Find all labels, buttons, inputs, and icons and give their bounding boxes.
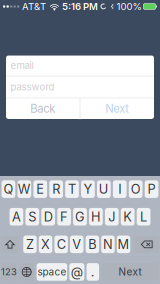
button[interactable]: L [137,208,150,225]
button[interactable]: W [17,180,31,198]
button[interactable]: Z [23,236,37,253]
button[interactable]: D [41,208,55,225]
staticText: K [123,209,132,224]
staticText: N [103,237,113,252]
staticText: @ [71,264,83,280]
button[interactable]: P [145,180,158,198]
staticText: H [91,209,101,224]
staticText: D [44,209,53,224]
button[interactable]: K [121,208,135,225]
button[interactable]: B [86,236,99,253]
button[interactable]: Next [80,98,154,119]
staticText: X [41,237,50,252]
staticText: R [52,181,60,197]
staticText: Y [83,181,92,197]
button[interactable]: Next [101,263,159,281]
button[interactable]: Delete [134,236,159,253]
staticText: AT&T [22,1,46,12]
staticText: G [75,209,85,224]
staticText: U [99,181,109,197]
button[interactable]: A [9,208,23,225]
staticText: C [57,237,66,252]
staticText: T [68,181,76,197]
staticText: Back [30,102,55,116]
button[interactable]: M [117,236,130,253]
staticText: E [36,181,44,197]
staticText: email [11,60,34,71]
staticText: V [72,237,81,252]
button[interactable]: X [39,236,52,253]
button[interactable]: Shift [1,236,19,253]
button[interactable]: V [70,236,83,253]
staticText: M [117,237,129,252]
button[interactable]: J [105,208,119,225]
staticText: Next [118,266,141,278]
button[interactable]: S [25,208,39,225]
button[interactable]: @ [69,263,84,281]
button[interactable]: Next keyboard [19,263,34,281]
button[interactable]: H [89,208,103,225]
staticText: I [118,181,121,197]
button[interactable]: T [65,180,79,198]
staticText: A [12,209,21,224]
button[interactable]: E [33,180,47,198]
staticText: F [60,209,68,224]
button[interactable]: F [57,208,71,225]
staticText: B [88,237,96,252]
button[interactable]: U [97,180,111,198]
button[interactable]: R [49,180,63,198]
staticText: L [140,209,147,224]
button[interactable]: Q [2,180,15,198]
staticText: S [28,209,36,224]
button[interactable]: G [73,208,87,225]
staticText: Z [26,237,34,252]
staticText: password [11,81,55,93]
staticText: 100% [116,1,141,12]
staticText: P [148,181,156,197]
button[interactable]: C [54,236,68,253]
button[interactable]: Y [81,180,95,198]
button[interactable]: . [86,263,99,281]
button[interactable]: space [37,263,67,281]
staticText: space [37,266,66,278]
button[interactable]: Back [6,98,80,119]
staticText: W [18,181,31,197]
button[interactable]: I [113,180,127,198]
staticText: . [91,264,95,280]
staticText: J [108,209,115,224]
staticText: Next [105,102,129,116]
staticText: O [131,181,141,197]
staticText: 123 [1,266,17,278]
button[interactable]: N [101,236,115,253]
staticText: 5:16 PM [62,1,98,12]
button[interactable]: O [129,180,142,198]
staticText: Q [3,181,13,197]
button[interactable]: 123 [1,263,17,281]
